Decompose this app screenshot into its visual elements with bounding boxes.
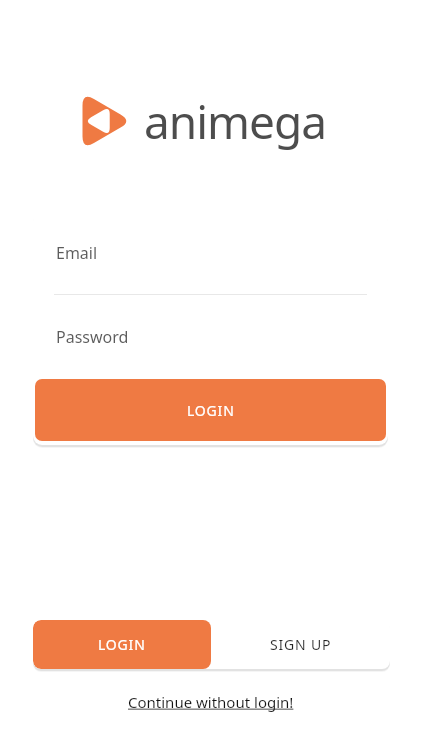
staticText: SIGN UP <box>270 635 332 654</box>
button[interactable]: LOGIN <box>35 379 386 441</box>
staticText: Password <box>56 326 129 348</box>
staticText: LOGIN <box>98 635 146 654</box>
staticText: LOGIN <box>187 401 235 420</box>
button[interactable]: Password <box>33 295 388 378</box>
staticText: Email <box>56 242 98 264</box>
staticText: Continue without login! <box>128 692 294 712</box>
button[interactable]: Continue without login! <box>118 688 304 716</box>
button[interactable]: LOGIN <box>33 620 211 669</box>
staticText: animega <box>144 90 327 153</box>
button[interactable]: SIGN UP <box>211 620 390 669</box>
button[interactable]: Email <box>33 212 388 294</box>
